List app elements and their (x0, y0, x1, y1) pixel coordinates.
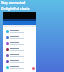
button[interactable] (3, 40, 36, 46)
staticText: Stay connected (1, 1, 26, 5)
button[interactable] (3, 52, 36, 58)
button[interactable] (3, 34, 36, 40)
button[interactable] (3, 28, 36, 34)
button[interactable] (3, 46, 36, 52)
staticText: Delightful chats (1, 6, 30, 11)
button[interactable]: New chat (32, 67, 35, 70)
button[interactable] (3, 64, 36, 70)
button[interactable] (3, 58, 36, 64)
